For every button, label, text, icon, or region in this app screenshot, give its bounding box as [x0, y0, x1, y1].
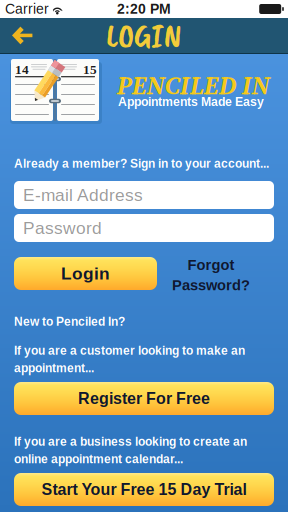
button[interactable]: Register For Free: [14, 382, 274, 415]
staticText: Login: [61, 264, 110, 283]
button[interactable]: Login: [14, 257, 157, 290]
staticText: LOGIN: [106, 14, 182, 56]
button[interactable]: E-mail Address: [14, 181, 274, 209]
staticText: Password: [23, 218, 102, 238]
staticText: online appointment calendar...: [14, 452, 183, 466]
staticText: appointment...: [14, 361, 94, 375]
staticText: Start Your Free 15 Day Trial: [41, 481, 246, 498]
staticText: If you are a customer looking to make an: [14, 344, 245, 357]
button[interactable]: Back: [0, 18, 44, 53]
staticText: 2:20 PM: [117, 1, 171, 17]
button[interactable]: Password: [14, 214, 274, 242]
staticText: Already a member? Sign in to your accoun…: [14, 157, 269, 170]
staticText: If you are a business looking to create …: [14, 435, 247, 448]
button[interactable]: Start Your Free 15 Day Trial: [14, 473, 274, 506]
staticText: New to Penciled In?: [14, 315, 125, 328]
staticText: Password?: [172, 277, 250, 293]
staticText: PENCILED IN: [117, 68, 270, 103]
staticText: Register For Free: [78, 390, 210, 407]
staticText: Carrier: [5, 1, 49, 17]
staticText: E-mail Address: [23, 185, 143, 205]
staticText: Forgot: [187, 257, 234, 273]
staticText: 15: [83, 62, 97, 77]
staticText: 14: [15, 62, 29, 77]
button[interactable]: Forgot: [155, 258, 267, 292]
staticText: Appointments Made Easy: [118, 95, 264, 109]
